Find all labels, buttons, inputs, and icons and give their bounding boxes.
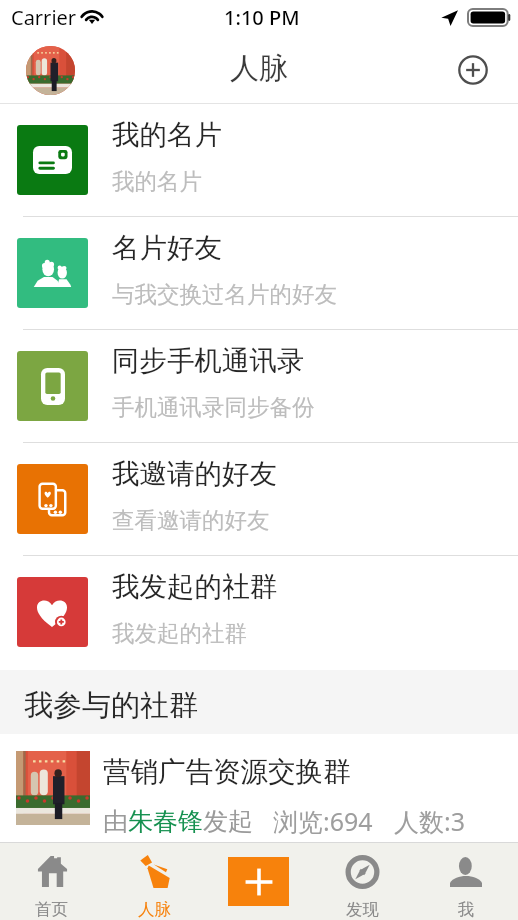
staticText: 我的名片: [112, 167, 202, 195]
button[interactable]: 我的名片: [0, 104, 518, 216]
staticText: 营销广告资源交换群: [103, 755, 351, 790]
staticText: 我的名片: [112, 118, 222, 153]
staticText: Carrier: [11, 4, 77, 31]
button[interactable]: 首页: [0, 843, 103, 920]
button[interactable]: Create: [228, 857, 289, 906]
button[interactable]: 名片好友: [0, 217, 518, 329]
button[interactable]: 我: [414, 843, 518, 920]
staticText: 首页: [35, 899, 68, 920]
staticText: 人脉: [138, 899, 171, 920]
staticText: 名片好友: [112, 231, 222, 266]
staticText: 同步手机通讯录: [112, 344, 305, 379]
staticText: 我参与的社群: [24, 687, 198, 724]
staticText: 发起: [203, 806, 253, 837]
button[interactable]: 发现: [310, 843, 414, 920]
staticText: 我: [458, 899, 475, 920]
button[interactable]: 我邀请的好友: [0, 443, 518, 555]
staticText: 手机通讯录同步备份: [112, 393, 315, 421]
staticText: 1:10 PM: [224, 4, 300, 31]
staticText: 人数:3: [394, 804, 466, 838]
staticText: 发现: [346, 899, 379, 920]
staticText: 查看邀请的好友: [112, 506, 270, 534]
staticText: 我发起的社群: [112, 619, 247, 647]
button[interactable]: Add: [455, 52, 491, 88]
staticText: 人脉: [230, 50, 288, 87]
button[interactable]: 人脉: [103, 843, 206, 920]
staticText: 朱春锋: [128, 806, 203, 837]
staticText: 与我交换过名片的好友: [112, 280, 337, 308]
button[interactable]: 营销广告资源交换群: [0, 734, 518, 842]
staticText: 由: [103, 806, 128, 837]
staticText: 我发起的社群: [112, 570, 277, 605]
staticText: 浏览:694: [273, 804, 373, 838]
button[interactable]: 同步手机通讯录: [0, 330, 518, 442]
button[interactable]: 我发起的社群: [0, 556, 518, 668]
button[interactable]: Profile: [26, 46, 75, 95]
staticText: 我邀请的好友: [112, 457, 277, 492]
